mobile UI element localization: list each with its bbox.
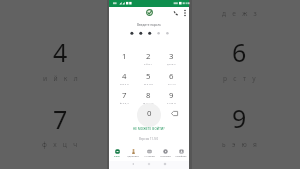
- button[interactable]: 4: [113, 71, 136, 90]
- staticText: 7: [53, 102, 68, 136]
- button[interactable]: Back: [129, 160, 137, 168]
- button[interactable]: Verified: [144, 7, 154, 17]
- button[interactable]: Платежи: [157, 145, 173, 159]
- staticText: 6: [232, 35, 247, 69]
- button[interactable]: Здоровье: [125, 145, 141, 159]
- button[interactable]: История: [141, 145, 157, 159]
- button[interactable]: 9: [160, 90, 183, 109]
- staticText: м н о п: [144, 82, 154, 85]
- button[interactable]: Backspace: [168, 107, 180, 119]
- button[interactable]: 1: [113, 51, 136, 70]
- staticText: 6: [169, 71, 174, 81]
- button[interactable]: Recents: [161, 160, 169, 168]
- button[interactable]: Home: [145, 160, 153, 168]
- staticText: и й к л: [120, 82, 129, 85]
- staticText: 4: [53, 35, 68, 69]
- staticText: 2: [146, 51, 151, 61]
- staticText: 1: [122, 51, 127, 61]
- button[interactable]: More options: [181, 9, 189, 17]
- staticText: 3: [169, 51, 174, 61]
- staticText: ш щ ъ ы: [143, 101, 154, 104]
- staticText: р с т у: [168, 82, 176, 85]
- staticText: а б в г: [144, 62, 153, 65]
- staticText: Здоровье: [127, 154, 139, 157]
- staticText: 9: [232, 101, 247, 135]
- button[interactable]: 3: [160, 51, 183, 70]
- staticText: ь э ю я: [222, 140, 260, 149]
- staticText: Профиль: [175, 154, 187, 157]
- button[interactable]: Банк: [109, 145, 125, 159]
- button[interactable]: 0: [137, 103, 161, 127]
- staticText: 4: [122, 71, 127, 81]
- staticText: 0: [147, 108, 152, 118]
- staticText: Банк: [114, 154, 120, 157]
- staticText: ф х ц ч: [42, 140, 80, 149]
- staticText: История: [144, 154, 155, 157]
- button[interactable]: 5: [137, 71, 160, 90]
- staticText: 7: [122, 90, 127, 100]
- staticText: ь э ю я: [167, 101, 176, 104]
- button[interactable]: Профиль: [173, 145, 189, 159]
- staticText: д е ж з: [167, 62, 176, 65]
- staticText: НЕ МОЖЕТЕ ВОЙТИ?: [133, 127, 165, 131]
- staticText: 9: [169, 90, 174, 100]
- staticText: и й к л: [43, 74, 80, 83]
- button[interactable]: 2: [137, 51, 160, 70]
- staticText: Версия 11.9.0: [139, 137, 159, 141]
- staticText: ф х ц ч: [120, 101, 129, 104]
- staticText: 8: [146, 90, 151, 100]
- staticText: 5: [146, 71, 151, 81]
- staticText: р с т у: [223, 74, 258, 83]
- button[interactable]: Call: [171, 9, 179, 17]
- button[interactable]: НЕ МОЖЕТЕ ВОЙТИ?: [109, 125, 189, 133]
- staticText: Платежи: [160, 154, 171, 157]
- staticText: Введите пароль: [137, 23, 161, 27]
- button[interactable]: 7: [113, 90, 136, 109]
- button[interactable]: 6: [160, 71, 183, 90]
- staticText: д е ж з: [222, 9, 260, 18]
- button[interactable]: 8: [137, 90, 160, 109]
